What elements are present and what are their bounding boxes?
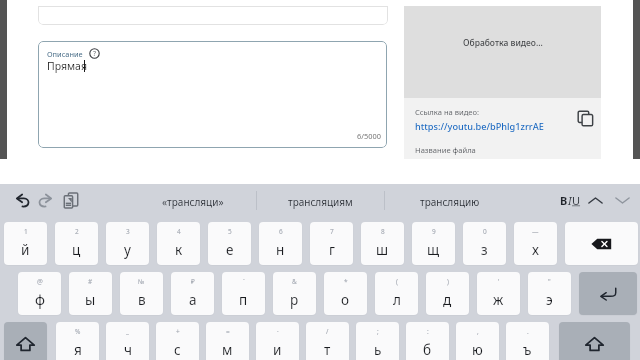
- staticText: с: [174, 341, 181, 359]
- button[interactable]: Copy link: [574, 107, 596, 129]
- button[interactable]: %: [56, 322, 99, 360]
- staticText: I: [568, 193, 572, 208]
- button[interactable]: Backspace: [565, 222, 638, 265]
- staticText: е: [226, 241, 234, 259]
- staticText: ': [498, 277, 500, 286]
- button[interactable]: Expand up: [584, 189, 606, 211]
- staticText: B: [560, 193, 568, 208]
- staticText: э: [546, 291, 553, 309]
- staticText: 5: [228, 227, 232, 236]
- button[interactable]: 7: [310, 222, 353, 265]
- button[interactable]: Shift: [4, 322, 47, 360]
- staticText: &: [292, 277, 297, 286]
- button[interactable]: «трансляци»: [128, 186, 258, 218]
- button[interactable]: 6: [259, 222, 302, 265]
- button[interactable]: +: [156, 322, 199, 360]
- button[interactable]: —: [514, 222, 557, 265]
- button[interactable]: 3: [106, 222, 149, 265]
- staticText: ч: [124, 341, 132, 359]
- button[interactable]: 4: [157, 222, 200, 265]
- staticText: д: [443, 291, 452, 309]
- button[interactable]: Enter: [579, 272, 637, 315]
- staticText: %: [75, 327, 81, 336]
- staticText: у: [124, 241, 131, 259]
- staticText: @: [37, 277, 43, 286]
- staticText: 1: [24, 227, 28, 236]
- staticText: трансляцию: [420, 195, 480, 209]
- button[interactable]: ,: [456, 322, 499, 360]
- staticText: з: [481, 241, 488, 259]
- button[interactable]: /: [306, 322, 349, 360]
- staticText: ·: [277, 327, 279, 336]
- button[interactable]: (: [375, 272, 418, 315]
- button[interactable]: Clipboard: [59, 188, 83, 212]
- button[interactable]: Undo: [11, 188, 35, 212]
- button[interactable]: &: [273, 272, 316, 315]
- staticText: .: [527, 327, 529, 336]
- staticText: 6/5000: [357, 131, 381, 141]
- button[interactable]: [38, 6, 388, 25]
- button[interactable]: =: [206, 322, 249, 360]
- button[interactable]: :: [406, 322, 449, 360]
- staticText: Прямая: [47, 59, 87, 73]
- button[interactable]: ': [477, 272, 520, 315]
- staticText: `: [243, 277, 245, 286]
- staticText: Ссылка на видео:: [415, 107, 480, 117]
- button[interactable]: №: [120, 272, 163, 315]
- staticText: ): [447, 277, 449, 286]
- staticText: Обработка видео...: [463, 37, 543, 49]
- staticText: /: [326, 327, 329, 336]
- staticText: 8: [381, 227, 385, 236]
- staticText: 4: [177, 227, 181, 236]
- button[interactable]: ·: [256, 322, 299, 360]
- staticText: ,: [477, 327, 479, 336]
- staticText: 7: [330, 227, 334, 236]
- staticText: я: [74, 341, 82, 359]
- staticText: в: [138, 291, 146, 309]
- button[interactable]: 0: [463, 222, 506, 265]
- button[interactable]: ;: [356, 322, 399, 360]
- staticText: ъ: [523, 341, 532, 359]
- button[interactable]: 1: [4, 222, 47, 265]
- staticText: ю: [472, 341, 483, 359]
- staticText: ф: [35, 291, 45, 309]
- button[interactable]: Collapse down: [611, 189, 633, 211]
- staticText: «трансляци»: [162, 195, 224, 209]
- button[interactable]: `: [222, 272, 265, 315]
- staticText: л: [393, 291, 401, 309]
- button[interactable]: 2: [55, 222, 98, 265]
- button[interactable]: ₽: [171, 272, 214, 315]
- button[interactable]: трансляцию: [385, 186, 515, 218]
- staticText: ш: [376, 241, 389, 259]
- button[interactable]: Описание: [38, 41, 387, 148]
- button[interactable]: 8: [361, 222, 404, 265]
- button[interactable]: *: [324, 272, 367, 315]
- staticText: т: [324, 341, 331, 359]
- button[interactable]: B: [560, 193, 581, 208]
- staticText: трансляциям: [288, 195, 353, 209]
- button[interactable]: Shift right: [559, 322, 630, 360]
- staticText: #: [88, 277, 93, 286]
- staticText: (: [396, 277, 398, 286]
- staticText: Описание: [47, 49, 83, 59]
- button[interactable]: Redo: [33, 188, 57, 212]
- staticText: х: [532, 241, 539, 259]
- staticText: 3: [126, 227, 130, 236]
- staticText: ц: [72, 241, 81, 259]
- staticText: р: [290, 291, 299, 309]
- staticText: ": [548, 277, 551, 286]
- button[interactable]: ): [426, 272, 469, 315]
- staticText: ?: [93, 49, 97, 59]
- button[interactable]: .: [506, 322, 549, 360]
- button[interactable]: 9: [412, 222, 455, 265]
- staticText: ы: [85, 291, 96, 309]
- button[interactable]: #: [69, 272, 112, 315]
- staticText: к: [175, 241, 183, 259]
- button[interactable]: ": [528, 272, 571, 315]
- button[interactable]: 5: [208, 222, 251, 265]
- staticText: щ: [427, 241, 440, 259]
- button[interactable]: трансляциям: [257, 186, 384, 218]
- button[interactable]: @: [18, 272, 61, 315]
- staticText: 6: [279, 227, 283, 236]
- button[interactable]: _: [106, 322, 149, 360]
